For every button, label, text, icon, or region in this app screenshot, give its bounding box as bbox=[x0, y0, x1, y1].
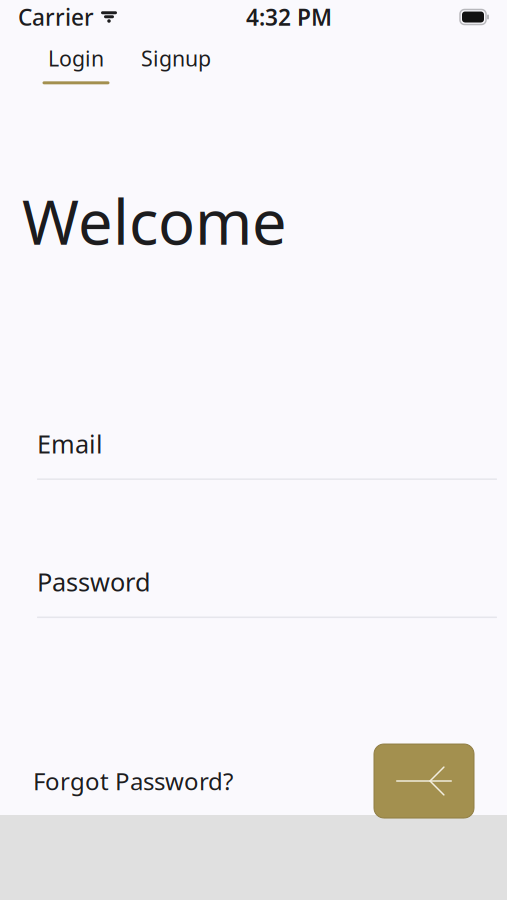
staticText: Login bbox=[48, 44, 104, 72]
staticText: 4:32 PM bbox=[246, 2, 332, 32]
staticText: Email bbox=[37, 427, 103, 460]
button[interactable]: Forgot Password? bbox=[33, 757, 233, 805]
staticText: Password bbox=[37, 565, 151, 598]
staticText: Carrier bbox=[18, 2, 94, 32]
button[interactable]: Login bbox=[26, 34, 126, 84]
staticText: Welcome bbox=[22, 180, 287, 262]
staticText: Forgot Password? bbox=[33, 765, 233, 797]
button[interactable]: Continue bbox=[374, 744, 474, 818]
button[interactable]: Signup bbox=[126, 34, 226, 84]
staticText: Signup bbox=[141, 44, 211, 72]
